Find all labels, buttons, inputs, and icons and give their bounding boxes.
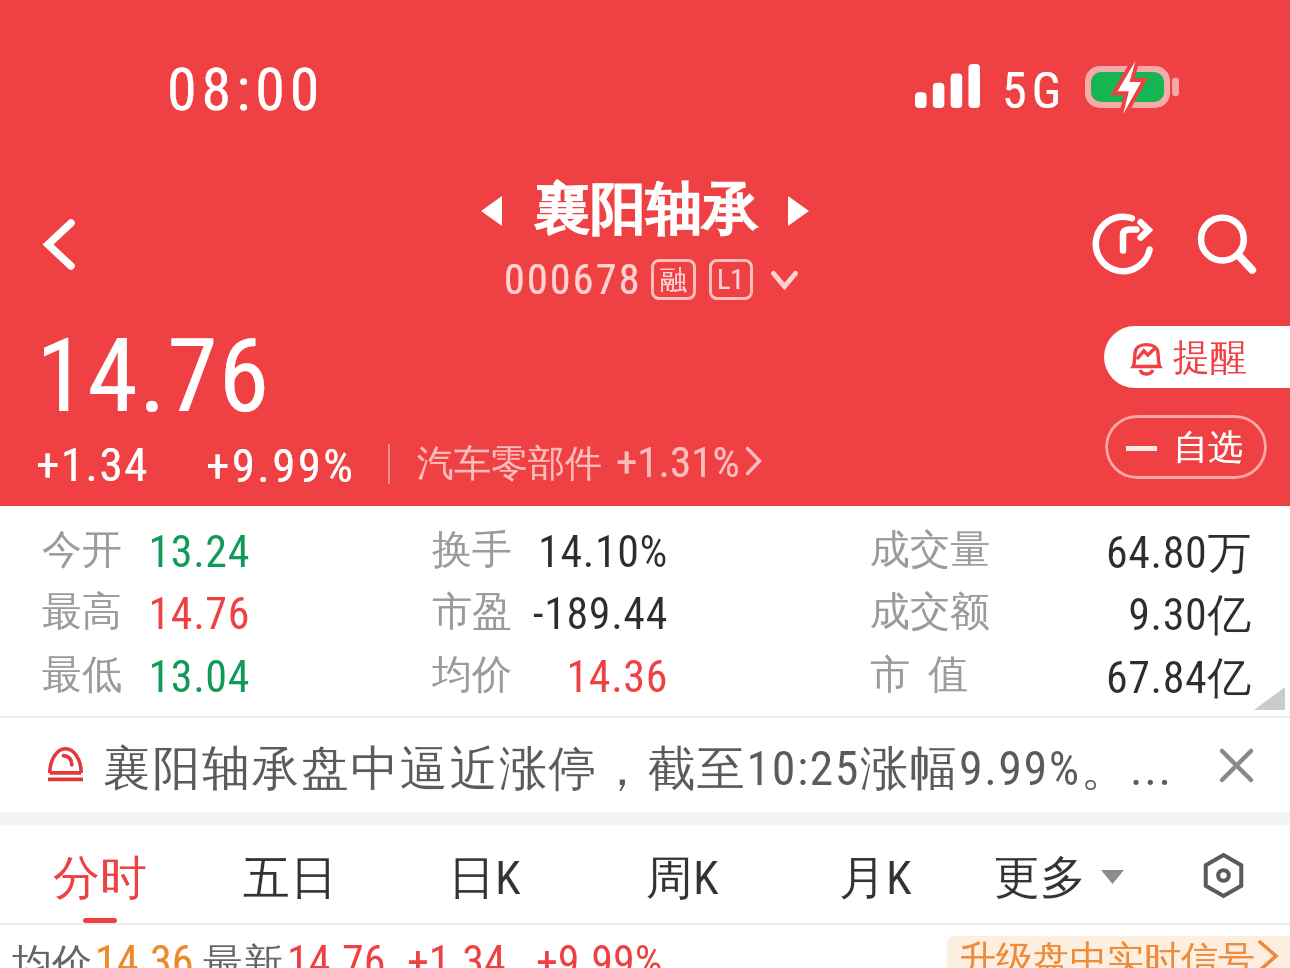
button[interactable] [0,718,1290,812]
staticText: 月K [839,849,912,908]
button[interactable]: 五日 [212,828,368,923]
staticText: 成交额 [870,586,990,636]
staticText: 000678 [504,255,642,304]
staticText: 13.24 [0,526,250,578]
staticText: 64.80万 [852,526,1252,581]
staticText: 日K [448,849,521,908]
staticText: L1 [717,263,745,296]
button[interactable]: 自选 [1105,415,1267,479]
button[interactable]: Refresh [1073,194,1173,294]
staticText: 67.84亿 [852,651,1252,706]
button[interactable]: 月K [797,828,953,923]
staticText: 5G [1002,62,1067,121]
staticText: 周K [646,849,719,908]
staticText: -189.44 [268,588,668,640]
button[interactable]: 行情明细 [0,516,1290,716]
button[interactable]: 升级盘中实时信号 [947,936,1290,968]
staticText: 市 值 [870,649,969,699]
staticText: 08:00 [167,54,325,124]
staticText: 14.76 [287,936,386,968]
staticText: 最低 [42,649,122,699]
staticText: 14.10% [268,526,668,578]
button[interactable]: Search [1178,196,1278,296]
staticText: 均价 [12,938,92,968]
button[interactable]: 襄阳轴承 [470,176,820,238]
button[interactable]: 周K [604,828,760,923]
staticText: 升级盘中实时信号 [959,936,1255,968]
staticText: 五日 [243,849,337,908]
staticText: 均价 [432,649,512,699]
button[interactable]: 日K [406,828,562,923]
staticText: 更多 [994,849,1086,907]
staticText: +1.34 [407,936,506,968]
button[interactable]: Back [8,194,108,294]
staticText: 最高 [42,586,122,636]
staticText: 成交量 [870,524,990,574]
staticText: 襄阳轴承盘中逼近涨停，截至10:25涨幅9.99%。... [103,739,1173,799]
staticText: 最新 [203,938,283,968]
staticText: 分时 [53,849,147,908]
staticText: +9.99% [536,936,663,968]
staticText: 换手 [432,524,512,574]
staticText: 襄阳轴承 [533,175,757,246]
staticText: 9.30亿 [852,588,1252,643]
staticText: 14.36 [268,651,668,703]
staticText: 提醒 [1173,334,1247,381]
staticText: +9.99% [206,438,356,493]
staticText: 汽车零部件 [417,440,602,487]
staticText: 今开 [42,524,122,574]
button[interactable]: Chart settings [1175,828,1275,923]
button[interactable]: 汽车零部件 +1.31% [410,432,766,484]
staticText: 市盈 [432,586,512,636]
button[interactable]: 更多 [968,828,1164,923]
staticText: +1.34 [36,437,149,492]
button[interactable]: 分时 [22,828,178,923]
button[interactable]: Close [1193,722,1279,808]
staticText: 14.36 [95,936,194,968]
staticText: 13.04 [0,651,250,703]
button[interactable]: 提醒 [1104,326,1290,388]
staticText: 融 [660,263,687,297]
button[interactable]: 000678 融 L1 [495,252,805,304]
staticText: 14.76 [36,316,271,436]
staticText: 自选 [1173,425,1243,469]
staticText: +1.31% [616,437,740,487]
staticText: 14.76 [0,588,250,640]
